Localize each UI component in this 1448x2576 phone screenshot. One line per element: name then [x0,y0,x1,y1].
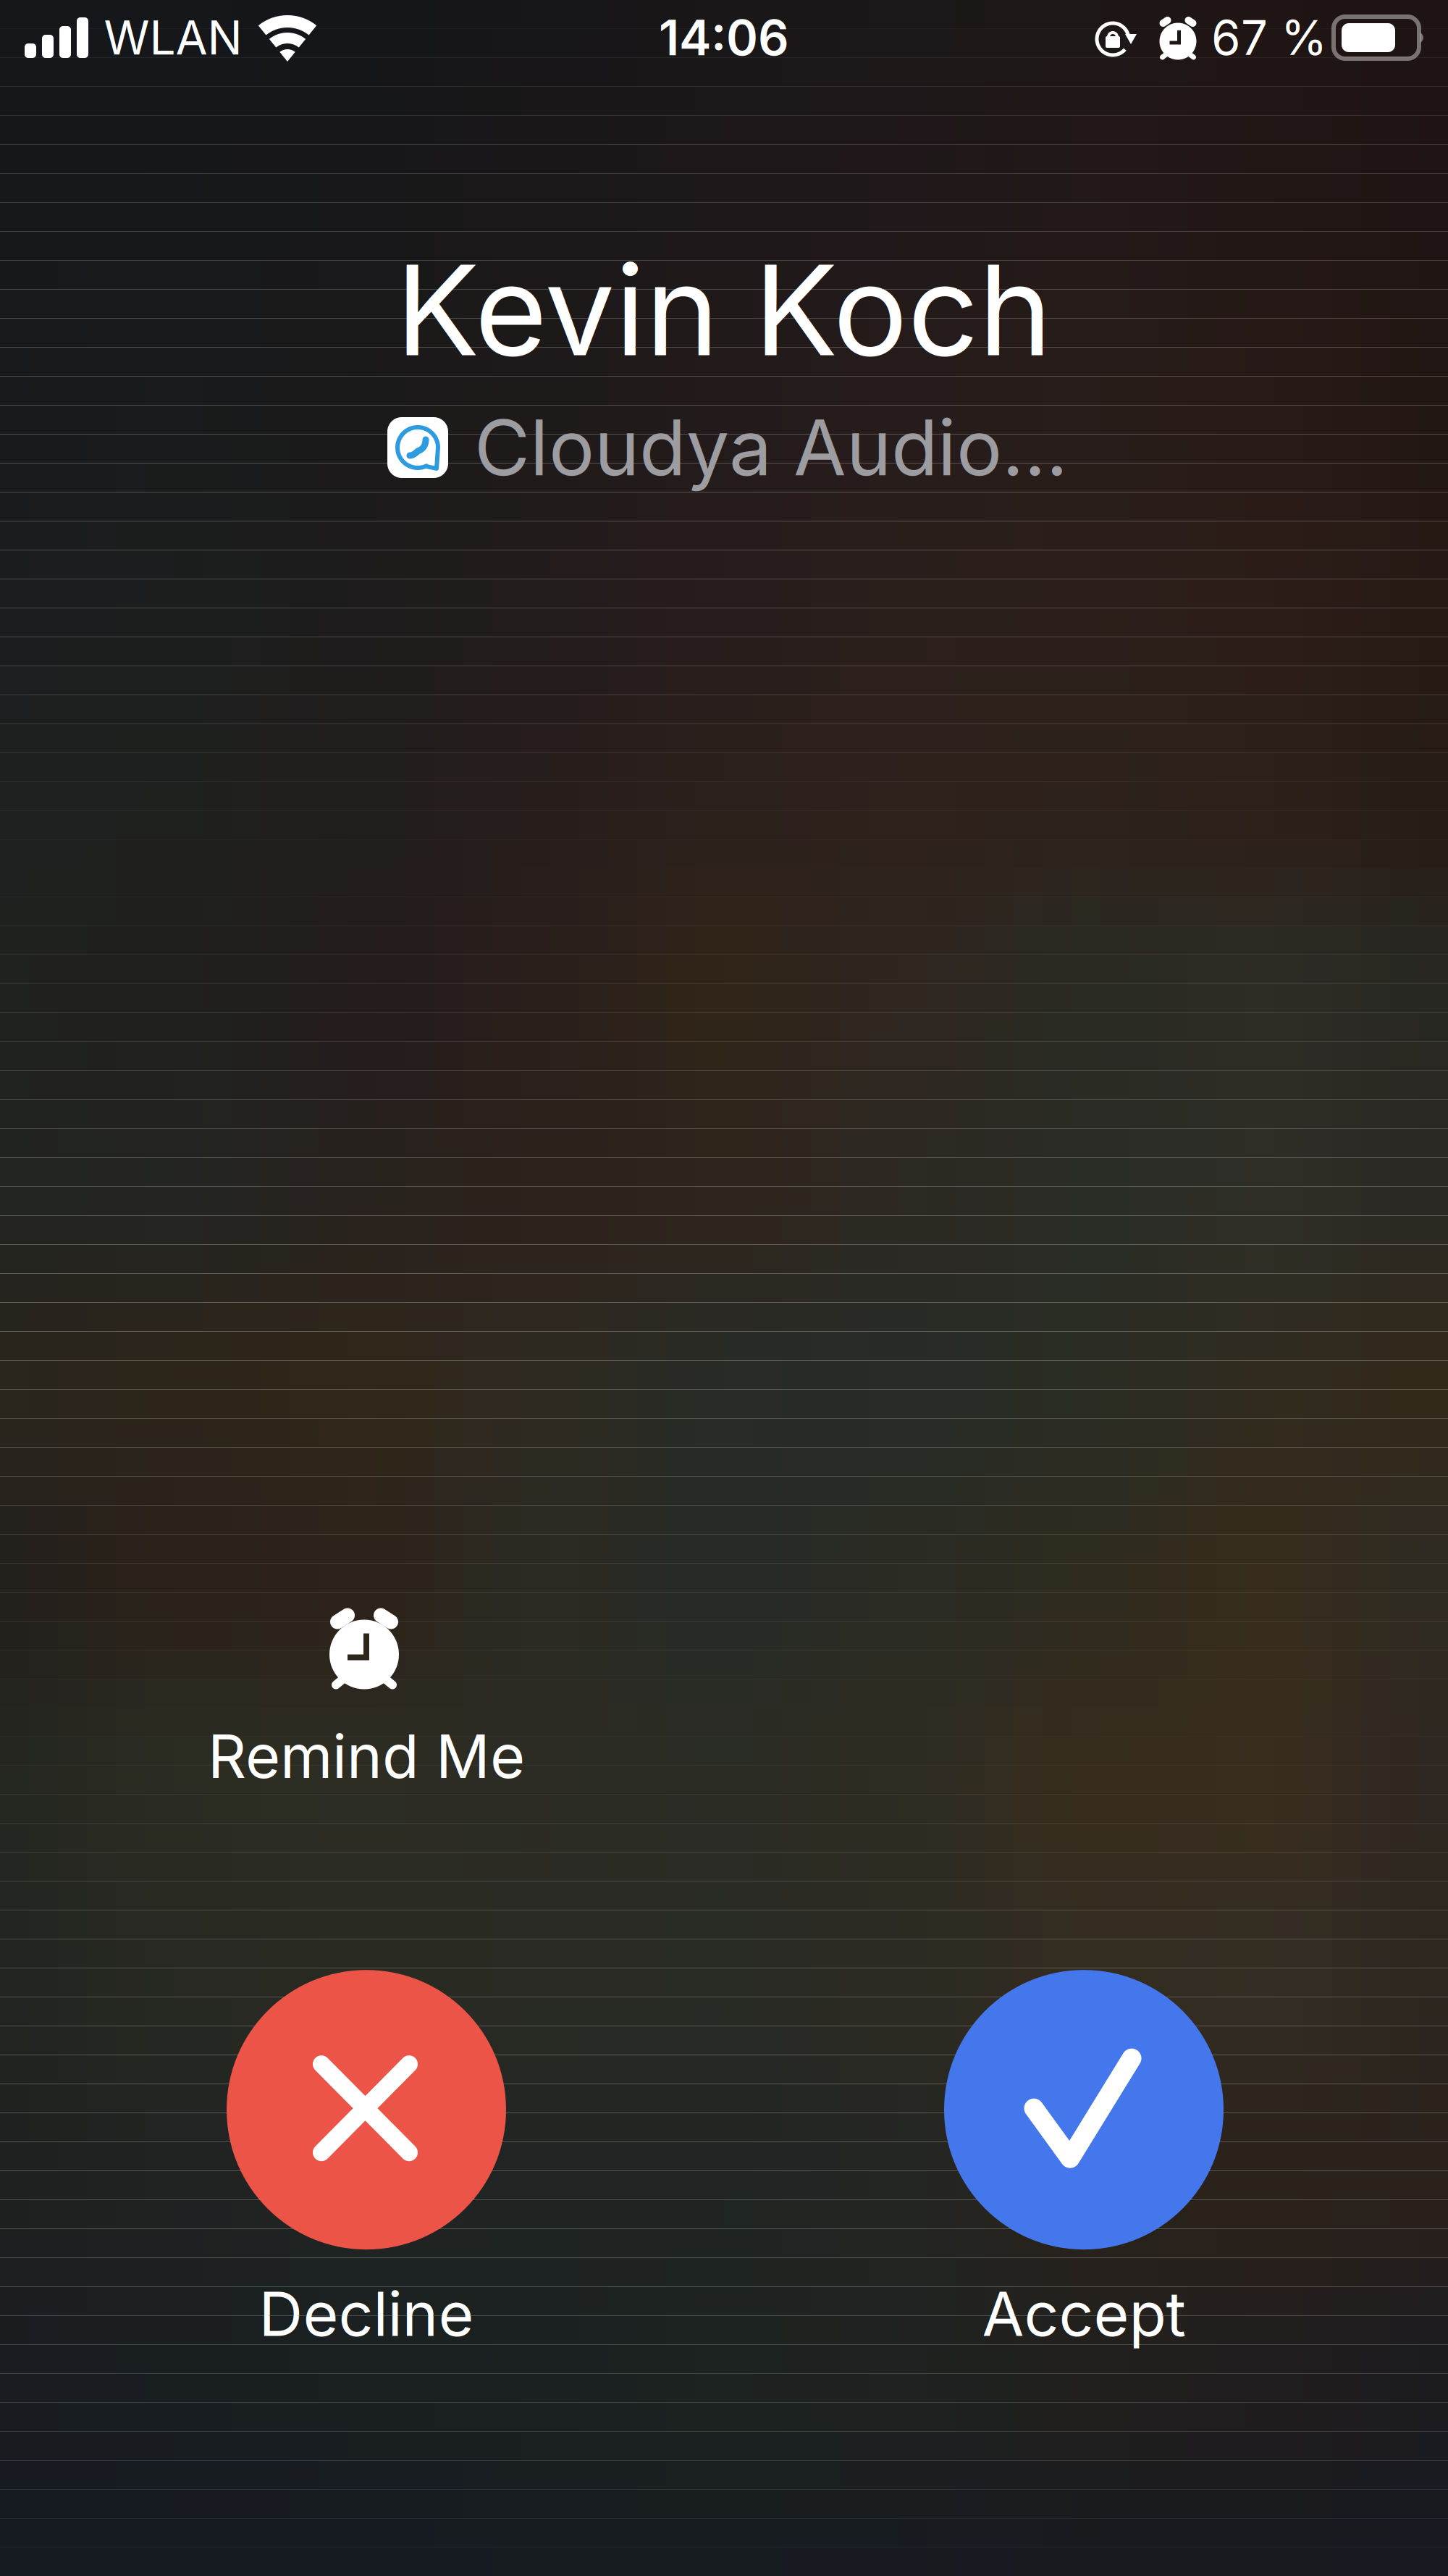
staticText: Remind Me [208,1720,525,1792]
staticText: 67 % [1211,9,1327,66]
staticText: WLAN [104,10,242,66]
button[interactable]: Accept [944,1970,1224,2351]
button[interactable]: Remind Me [207,1579,526,1797]
staticText: Accept [982,2277,1186,2351]
staticText: Cloudya Audio… [474,401,1068,494]
staticText: 14:06 [659,8,789,67]
staticText: Decline [259,2277,474,2351]
staticText: Kevin Koch [396,235,1052,385]
button[interactable]: Decline [227,1970,506,2351]
